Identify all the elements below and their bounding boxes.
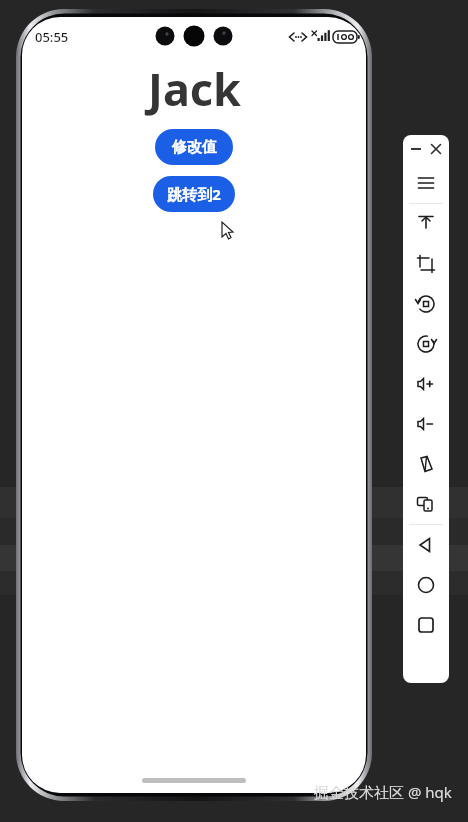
button[interactable]: Power [403, 204, 449, 244]
button[interactable]: Recents [403, 605, 449, 645]
staticText: 修改值 [172, 138, 217, 157]
button[interactable]: Volume down [403, 404, 449, 444]
staticText: 跳转到2 [167, 184, 221, 204]
button[interactable]: Minimize [409, 142, 423, 156]
button[interactable]: Multi display [403, 484, 449, 524]
button[interactable]: Volume up [403, 364, 449, 404]
button[interactable]: Close [429, 142, 443, 156]
staticText: 掘金技术社区 @ hqk [314, 782, 452, 802]
button[interactable]: Fold [403, 444, 449, 484]
staticText: Jack [148, 58, 241, 119]
button[interactable]: Rotate right [403, 324, 449, 364]
button[interactable]: 修改值 [155, 129, 233, 165]
staticText: 05:55 [35, 28, 69, 46]
button[interactable]: Screenshot [403, 244, 449, 284]
button[interactable]: Home [403, 565, 449, 605]
button[interactable]: Menu [403, 163, 449, 203]
button[interactable]: 跳转到2 [153, 176, 235, 212]
button[interactable]: Rotate left [403, 284, 449, 324]
button[interactable]: Back [403, 525, 449, 565]
